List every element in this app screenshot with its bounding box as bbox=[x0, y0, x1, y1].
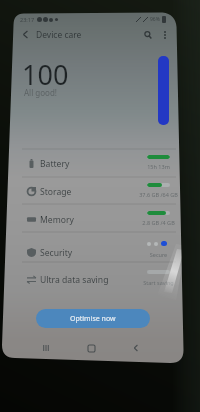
staticText: Ultra data saving bbox=[40, 274, 109, 286]
button[interactable]: Storage bbox=[0, 178, 200, 206]
button[interactable]: Ultra data saving bbox=[0, 266, 200, 294]
staticText: 37.6 GB /64 GB bbox=[136, 191, 181, 198]
button[interactable]: Back bbox=[129, 341, 143, 355]
staticText: 15h 13m bbox=[136, 163, 181, 170]
staticText: Optimise now bbox=[70, 314, 116, 324]
button[interactable]: Home bbox=[84, 341, 98, 355]
staticText: 100 bbox=[22, 56, 69, 93]
staticText: Memory bbox=[40, 214, 74, 226]
staticText: Secure bbox=[136, 251, 181, 258]
button[interactable]: Optimise now bbox=[36, 309, 150, 328]
button[interactable]: More options bbox=[157, 27, 172, 42]
staticText: 96% bbox=[150, 16, 160, 23]
staticText: All good! bbox=[24, 87, 57, 98]
button[interactable]: Navigate up bbox=[18, 27, 33, 42]
staticText: Device care bbox=[36, 29, 82, 41]
button[interactable]: Search bbox=[140, 27, 155, 42]
button[interactable]: Memory bbox=[0, 206, 200, 234]
staticText: Battery bbox=[40, 158, 70, 170]
staticText: Start saving bbox=[136, 279, 181, 286]
staticText: 23:17 bbox=[20, 16, 35, 23]
staticText: 2.8 GB /4 GB bbox=[136, 219, 181, 226]
staticText: Security bbox=[40, 247, 73, 259]
staticText: Storage bbox=[40, 186, 72, 198]
button[interactable]: Battery bbox=[0, 150, 200, 178]
button[interactable]: Recents bbox=[39, 341, 53, 355]
button[interactable]: Security bbox=[0, 238, 200, 266]
